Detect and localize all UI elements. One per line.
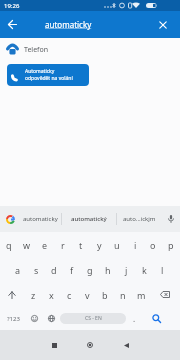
button[interactable]: b bbox=[96, 282, 114, 307]
button[interactable]: v bbox=[78, 282, 96, 307]
staticText: u bbox=[114, 239, 120, 251]
button[interactable]: u bbox=[108, 232, 126, 257]
staticText: s bbox=[34, 264, 39, 276]
staticText: r bbox=[61, 239, 65, 251]
staticText: y bbox=[97, 239, 102, 251]
button[interactable] bbox=[36, 330, 72, 360]
button[interactable] bbox=[154, 16, 172, 34]
button[interactable]: . bbox=[126, 307, 142, 330]
staticText: f bbox=[70, 264, 74, 276]
button[interactable] bbox=[150, 282, 180, 307]
staticText: automatický bbox=[71, 215, 107, 223]
button[interactable]: f bbox=[63, 257, 81, 282]
button[interactable] bbox=[0, 206, 20, 232]
button[interactable] bbox=[0, 11, 24, 38]
staticText: w bbox=[23, 239, 31, 251]
button[interactable]: e bbox=[36, 232, 54, 257]
staticText: . bbox=[133, 313, 136, 324]
staticText: l bbox=[161, 264, 164, 276]
button[interactable]: x bbox=[42, 282, 60, 307]
staticText: m bbox=[137, 289, 146, 301]
staticText: h bbox=[105, 264, 111, 276]
button[interactable]: h bbox=[99, 257, 117, 282]
staticText: k bbox=[142, 264, 147, 276]
staticText: automaticky bbox=[45, 19, 92, 30]
staticText: CS - EN bbox=[85, 315, 102, 322]
button[interactable]: Telefon bbox=[7, 42, 180, 57]
button[interactable]: auto...ickjm bbox=[117, 206, 162, 232]
staticText: v bbox=[85, 289, 90, 301]
button[interactable]: ?123 bbox=[0, 307, 26, 330]
button[interactable] bbox=[108, 330, 144, 360]
staticText: j bbox=[125, 264, 128, 276]
button[interactable]: Automaticky bbox=[7, 64, 89, 86]
staticText: z bbox=[31, 289, 36, 301]
staticText: odpovědět na volání bbox=[25, 75, 73, 82]
button[interactable] bbox=[142, 307, 180, 330]
staticText: Automaticky bbox=[25, 68, 55, 75]
staticText: b bbox=[102, 289, 108, 301]
button[interactable] bbox=[0, 282, 24, 307]
staticText: d bbox=[51, 264, 57, 276]
button[interactable]: i bbox=[126, 232, 144, 257]
button[interactable]: g bbox=[81, 257, 99, 282]
button[interactable]: t bbox=[72, 232, 90, 257]
button[interactable] bbox=[43, 307, 60, 330]
staticText: c bbox=[67, 289, 72, 301]
button[interactable]: CS - EN bbox=[60, 313, 126, 324]
staticText: 19:26 bbox=[4, 2, 20, 10]
button[interactable]: j bbox=[117, 257, 135, 282]
button[interactable]: q bbox=[0, 232, 18, 257]
staticText: t bbox=[79, 239, 83, 251]
staticText: ?123 bbox=[7, 315, 20, 323]
staticText: o bbox=[150, 239, 156, 251]
button[interactable]: c bbox=[60, 282, 78, 307]
button[interactable] bbox=[162, 206, 180, 232]
staticText: a bbox=[15, 264, 21, 276]
button[interactable]: automatický bbox=[62, 206, 116, 232]
button[interactable]: y bbox=[90, 232, 108, 257]
button[interactable]: d bbox=[45, 257, 63, 282]
button[interactable]: w bbox=[18, 232, 36, 257]
staticText: e bbox=[42, 239, 48, 251]
button[interactable]: r bbox=[54, 232, 72, 257]
staticText: g bbox=[87, 264, 93, 276]
staticText: n bbox=[120, 289, 126, 301]
staticText: auto...ickjm bbox=[123, 215, 156, 223]
staticText: Telefon bbox=[24, 45, 49, 55]
button[interactable]: z bbox=[24, 282, 42, 307]
button[interactable] bbox=[72, 330, 108, 360]
staticText: q bbox=[6, 239, 12, 251]
staticText: automaticky bbox=[23, 215, 58, 223]
button[interactable]: s bbox=[27, 257, 45, 282]
button[interactable] bbox=[26, 307, 43, 330]
staticText: p bbox=[168, 239, 174, 251]
button[interactable]: a bbox=[9, 257, 27, 282]
button[interactable]: n bbox=[114, 282, 132, 307]
staticText: x bbox=[49, 289, 54, 301]
button[interactable]: m bbox=[132, 282, 150, 307]
button[interactable]: o bbox=[144, 232, 162, 257]
button[interactable]: automaticky bbox=[20, 206, 61, 232]
staticText: i bbox=[134, 239, 137, 251]
button[interactable]: k bbox=[135, 257, 153, 282]
button[interactable]: p bbox=[162, 232, 180, 257]
button[interactable]: l bbox=[153, 257, 171, 282]
